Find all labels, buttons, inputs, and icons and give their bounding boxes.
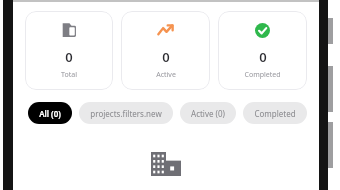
staticText: Completed	[244, 70, 281, 80]
other: Total	[61, 22, 78, 39]
staticText: Active (0)	[191, 108, 225, 119]
staticText: Completed	[254, 108, 296, 119]
staticText: 0	[65, 48, 73, 66]
staticText: 0	[162, 48, 170, 66]
staticText: Active	[156, 70, 176, 80]
button[interactable]: Active (0)	[180, 102, 236, 124]
other: Active	[157, 22, 174, 39]
button[interactable]: Total	[25, 11, 113, 90]
staticText: All (0)	[39, 108, 61, 119]
button[interactable]: Completed	[243, 102, 307, 124]
button[interactable]: All (0)	[28, 102, 72, 124]
staticText: projects.filters.new	[90, 108, 162, 119]
button[interactable]: Completed	[218, 11, 307, 90]
staticText: Total	[61, 70, 77, 80]
button[interactable]: projects.filters.new	[79, 102, 173, 124]
button[interactable]: Active	[121, 11, 210, 90]
staticText: 0	[259, 48, 267, 66]
other: Completed	[254, 22, 271, 39]
